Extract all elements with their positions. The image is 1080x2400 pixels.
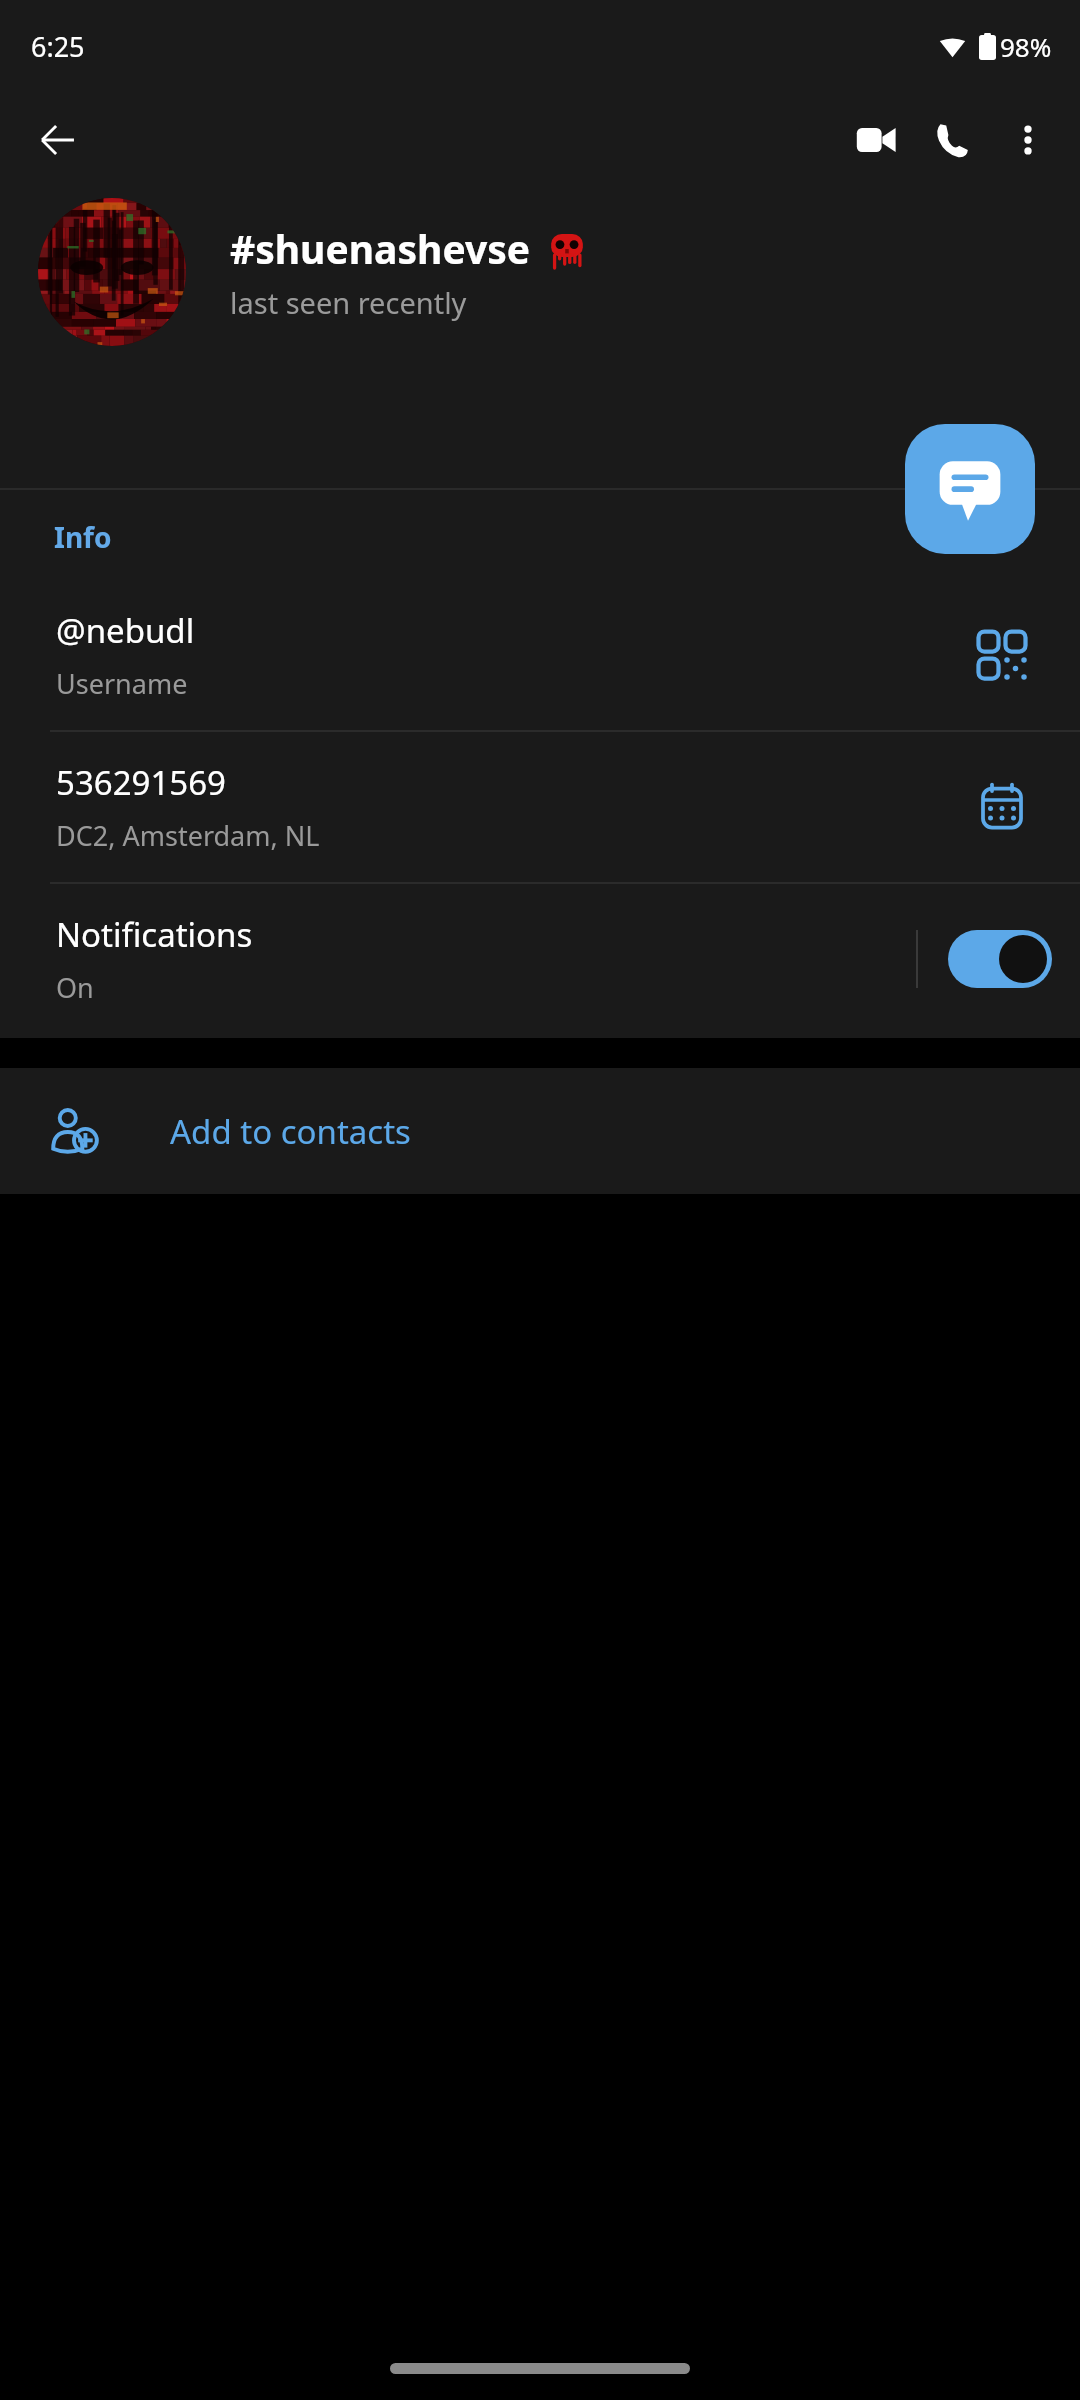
button[interactable]: Call: [914, 102, 990, 178]
staticText: Username: [56, 665, 188, 702]
staticText: #shuenashevse: [230, 222, 531, 275]
button[interactable]: 536291569: [0, 732, 1080, 882]
staticText: 98%: [1000, 29, 1052, 64]
button[interactable]: Video call: [838, 102, 914, 178]
staticText: 6:25: [31, 28, 85, 65]
staticText: Notifications: [56, 912, 253, 957]
button[interactable]: Calendar: [962, 767, 1042, 847]
staticText: @nebudl: [56, 608, 195, 653]
button[interactable]: Notifications: [0, 884, 1080, 1034]
staticText: Info: [54, 518, 112, 556]
staticText: On: [56, 969, 94, 1006]
staticText: Add to contacts: [170, 1109, 411, 1154]
button[interactable]: Show QR code: [962, 615, 1042, 695]
button[interactable]: Back: [22, 104, 94, 176]
button[interactable]: Send message: [905, 424, 1035, 554]
staticText: 536291569: [56, 760, 226, 805]
button[interactable]: Notifications toggle: [948, 930, 1052, 988]
staticText: DC2, Amsterdam, NL: [56, 817, 320, 854]
button[interactable]: Add to contacts: [0, 1068, 1080, 1194]
button[interactable]: @nebudl: [0, 580, 1080, 730]
staticText: last seen recently: [230, 283, 467, 322]
button[interactable]: More options: [990, 102, 1066, 178]
